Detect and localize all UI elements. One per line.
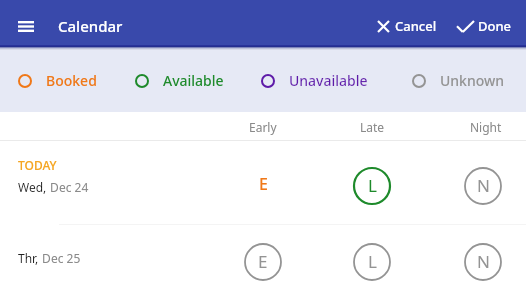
- staticText: Unavailable: [289, 71, 368, 90]
- button[interactable]: Early shift, unknown: [244, 243, 282, 281]
- staticText: L: [368, 174, 377, 197]
- staticText: Booked: [46, 71, 97, 90]
- staticText: N: [477, 174, 490, 197]
- staticText: Cancel: [395, 17, 437, 35]
- staticText: N: [477, 250, 490, 273]
- staticText: Early: [249, 119, 277, 135]
- staticText: Night: [470, 119, 502, 135]
- button[interactable]: Booked: [18, 71, 97, 90]
- staticText: E: [258, 250, 268, 273]
- staticText: Late: [360, 119, 385, 135]
- button[interactable]: Night shift, unknown: [464, 167, 502, 205]
- staticText: E: [259, 173, 268, 195]
- button[interactable]: Late shift, available: [353, 167, 391, 205]
- staticText: Dec 24: [47, 179, 89, 195]
- staticText: Unknown: [440, 71, 505, 90]
- staticText: TODAY: [18, 157, 57, 173]
- staticText: Available: [163, 71, 224, 90]
- button[interactable]: Late shift, unknown: [353, 243, 391, 281]
- button[interactable]: Night shift, unknown: [464, 243, 502, 281]
- staticText: Thr,: [18, 250, 39, 266]
- button[interactable]: Cancel: [372, 9, 443, 43]
- staticText: Calendar: [58, 16, 123, 36]
- button[interactable]: Available: [135, 71, 224, 90]
- button[interactable]: [0, 225, 526, 296]
- button[interactable]: Unavailable: [261, 71, 368, 90]
- staticText: Done: [478, 17, 512, 35]
- button[interactable]: Early shift, booked: [244, 166, 282, 204]
- button[interactable]: Unknown: [412, 71, 505, 90]
- staticText: Wed,: [18, 179, 47, 195]
- button[interactable]: Done: [451, 9, 518, 43]
- staticText: L: [368, 250, 377, 273]
- staticText: Dec 25: [39, 250, 81, 266]
- button[interactable]: [0, 141, 526, 224]
- button[interactable]: Open navigation menu: [10, 10, 42, 42]
